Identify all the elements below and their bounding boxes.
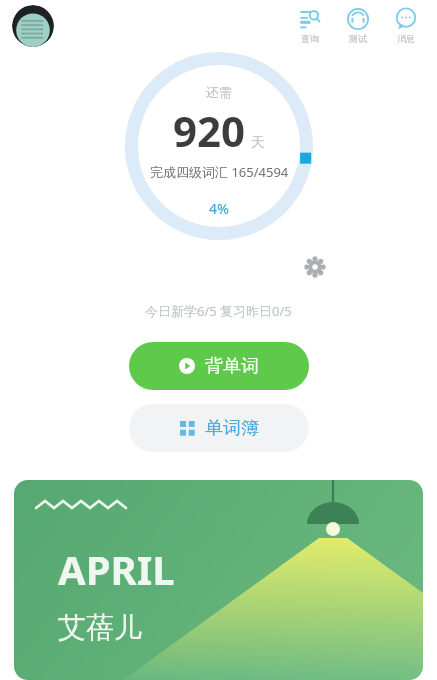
button[interactable]: 查询 [297,8,323,44]
button[interactable]: 测试 [345,8,371,44]
button[interactable]: 单词簿 [129,404,309,452]
button[interactable]: APRIL [14,480,423,680]
staticText: APRIL [58,542,175,596]
button[interactable]: 背单词 [129,342,309,390]
staticText: 背单词 [205,355,259,378]
staticText: 今日新学6/5 复习昨日0/5 [145,302,292,320]
button[interactable]: 消息 [393,8,419,44]
staticText: 还需 [206,84,232,100]
staticText: 920 [173,102,246,159]
staticText: 查询 [301,33,319,44]
staticText: 消息 [397,33,415,44]
staticText: 测试 [349,33,367,44]
staticText: 完成四级词汇 165/4594 [150,163,289,181]
staticText: 单词簿 [205,417,259,440]
button[interactable]: Settings [300,252,330,282]
staticText: 4% [209,199,229,218]
button[interactable]: Profile [12,5,54,47]
staticText: 艾蓓儿 [58,610,142,645]
staticText: 天 [251,134,265,152]
